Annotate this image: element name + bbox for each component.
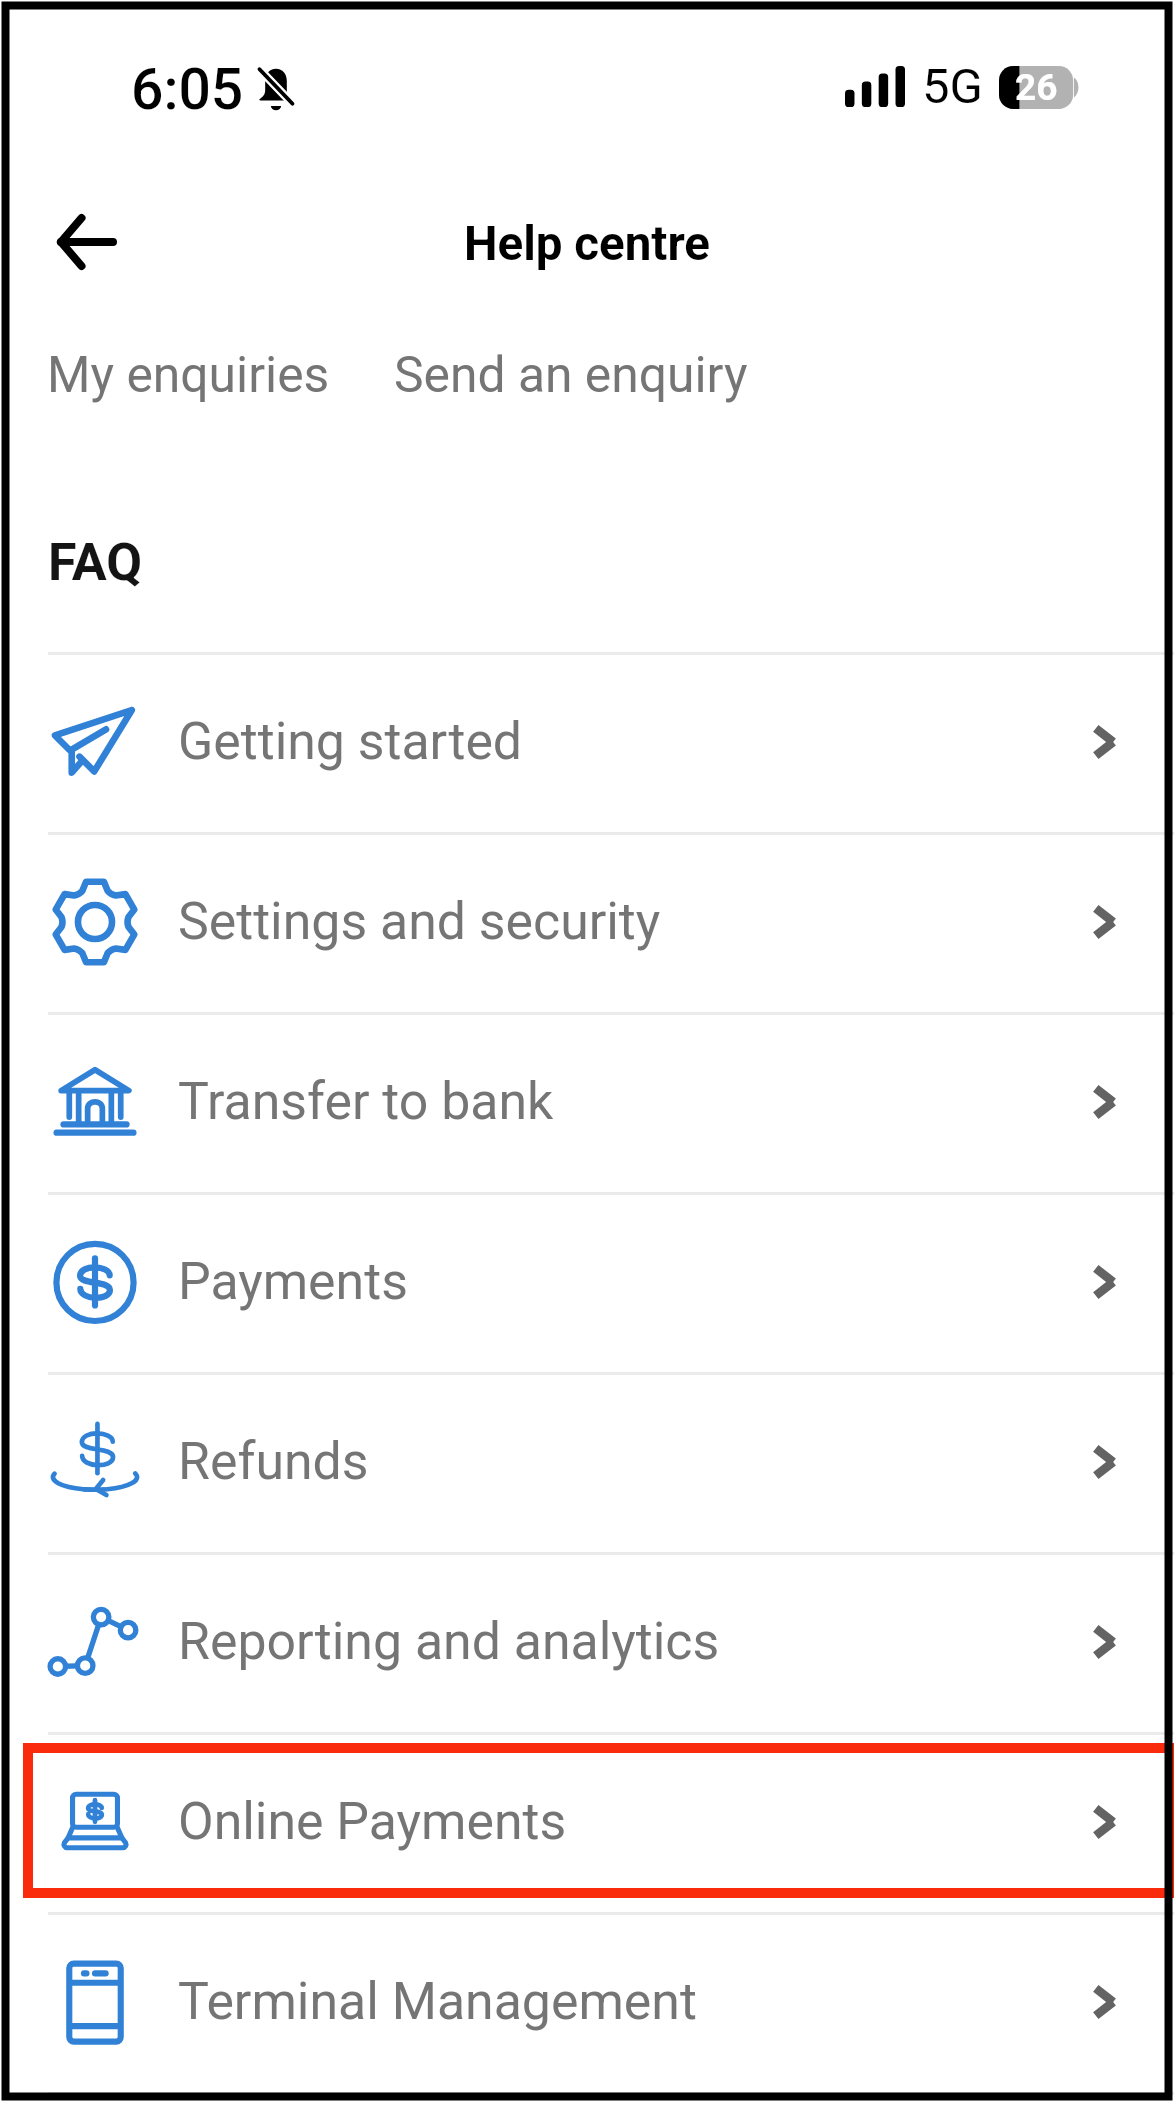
staticText: 26 (1015, 66, 1058, 109)
button[interactable]: Back (38, 194, 134, 290)
staticText: 6:05 (131, 56, 244, 123)
button[interactable]: Refunds (0, 1375, 1174, 1552)
button[interactable]: My enquiries (47, 346, 330, 404)
staticText: My enquiries (47, 346, 330, 404)
staticText: Terminal Management (178, 1971, 1092, 2032)
staticText: Settings and security (178, 891, 1092, 952)
button[interactable]: Reporting and analytics (0, 1555, 1174, 1732)
button[interactable]: Payments (0, 1195, 1174, 1372)
button[interactable]: Online Payments (0, 1735, 1174, 1912)
staticText: Reporting and analytics (178, 1611, 1092, 1672)
staticText: Help centre (464, 216, 710, 272)
button[interactable]: Transfer to bank (0, 1015, 1174, 1192)
staticText: Refunds (178, 1431, 1092, 1492)
staticText: 5G (922, 58, 983, 115)
staticText: Getting started (178, 711, 1092, 772)
button[interactable]: Getting started (0, 655, 1174, 832)
staticText: Transfer to bank (178, 1071, 1092, 1132)
button[interactable]: Settings and security (0, 835, 1174, 1012)
button[interactable]: Terminal Management (0, 1915, 1174, 2092)
staticText: Send an enquiry (394, 346, 748, 404)
button[interactable]: Send an enquiry (394, 346, 748, 404)
staticText: Online Payments (178, 1791, 1092, 1852)
staticText: FAQ (48, 532, 143, 593)
staticText: Payments (178, 1251, 1092, 1312)
